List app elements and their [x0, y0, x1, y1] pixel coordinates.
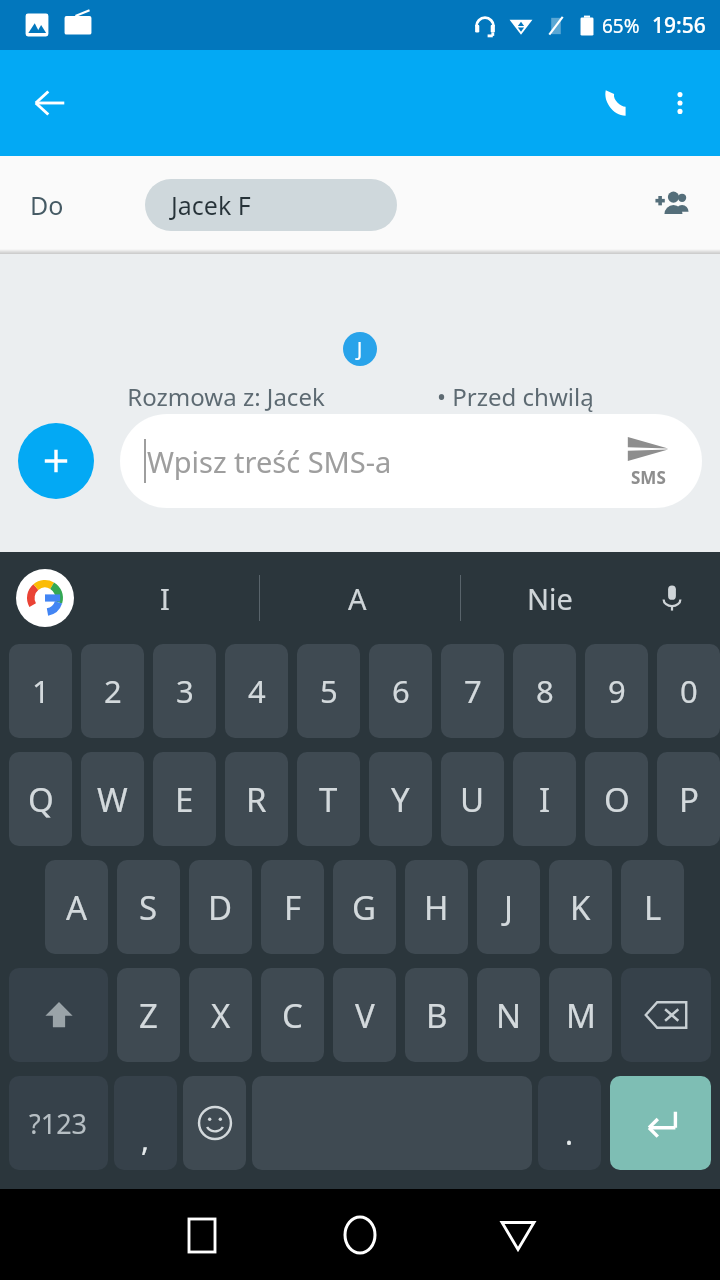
staticText: X [211, 993, 231, 1038]
button[interactable]: Send SMS [612, 425, 684, 497]
staticText: I [539, 777, 551, 822]
staticText: 3 [176, 670, 194, 712]
staticText: B [426, 993, 448, 1038]
staticText: 2 [104, 670, 122, 712]
button[interactable]: Jacek F [145, 179, 397, 231]
button[interactable]: V [333, 968, 396, 1062]
button[interactable]: Nie [465, 552, 635, 644]
button[interactable]: Home [328, 1203, 392, 1267]
staticText: J [357, 336, 363, 362]
button[interactable]: Z [117, 968, 180, 1062]
button[interactable]: X [189, 968, 252, 1062]
staticText: 1 [32, 670, 50, 712]
staticText: 6 [392, 670, 410, 712]
staticText: E [175, 777, 194, 822]
staticText: Wpisz treść SMS-a [147, 442, 392, 481]
button[interactable]: ?123 [9, 1076, 108, 1170]
button[interactable]: P [657, 752, 720, 846]
staticText: Jacek F [171, 188, 251, 222]
staticText: W [97, 777, 128, 822]
button[interactable]: Y [369, 752, 432, 846]
button[interactable]: Wpisz treść SMS-a [120, 414, 702, 508]
button[interactable]: Emoji [183, 1076, 246, 1170]
button[interactable]: Voice input [644, 570, 700, 626]
staticText: 0 [680, 670, 698, 712]
staticText: 9 [608, 670, 626, 712]
button[interactable]: More options [652, 75, 708, 131]
staticText: Z [139, 993, 158, 1038]
staticText: F [284, 885, 302, 930]
button[interactable]: R [225, 752, 288, 846]
button[interactable]: M [549, 968, 612, 1062]
button[interactable]: O [585, 752, 648, 846]
button[interactable]: A [272, 552, 442, 644]
staticText: 7 [464, 670, 482, 712]
staticText: 65% [602, 13, 640, 39]
staticText: Rozmowa z: Jacek • Przed chwilą [127, 380, 594, 413]
button[interactable]: B [405, 968, 468, 1062]
staticText: SMS [631, 466, 666, 489]
button[interactable]: Call [588, 75, 644, 131]
button[interactable]: . [538, 1076, 601, 1170]
staticText: 19:56 [652, 11, 706, 40]
button[interactable]: 6 [369, 644, 432, 738]
button[interactable]: Back [486, 1203, 550, 1267]
button[interactable]: T [297, 752, 360, 846]
button[interactable]: A [45, 860, 108, 954]
button[interactable]: J [477, 860, 540, 954]
button[interactable]: Back [22, 75, 78, 131]
staticText: ?123 [29, 1105, 88, 1142]
button[interactable]: Add contact [644, 177, 700, 233]
staticText: Q [28, 777, 54, 822]
staticText: H [424, 885, 449, 930]
button[interactable]: 2 [81, 644, 144, 738]
button[interactable]: 5 [297, 644, 360, 738]
button[interactable]: D [189, 860, 252, 954]
staticText: Y [391, 777, 410, 822]
staticText: K [570, 885, 591, 930]
staticText: M [566, 993, 596, 1038]
button[interactable]: I [80, 552, 250, 644]
button[interactable]: 9 [585, 644, 648, 738]
button[interactable]: I [513, 752, 576, 846]
staticText: 4 [248, 670, 266, 712]
staticText: 8 [536, 670, 554, 712]
button[interactable]: Enter [610, 1076, 711, 1170]
button[interactable]: W [81, 752, 144, 846]
button[interactable]: 8 [513, 644, 576, 738]
button[interactable]: U [441, 752, 504, 846]
button[interactable]: 0 [657, 644, 720, 738]
button[interactable]: Google search [16, 569, 74, 627]
staticText: S [139, 885, 158, 930]
button[interactable]: Add attachment [18, 423, 94, 499]
staticText: J [504, 885, 514, 930]
button[interactable]: E [153, 752, 216, 846]
staticText: T [319, 777, 338, 822]
button[interactable]: L [621, 860, 684, 954]
button[interactable]: Shift [9, 968, 108, 1062]
button[interactable]: 4 [225, 644, 288, 738]
button[interactable]: G [333, 860, 396, 954]
button[interactable]: N [477, 968, 540, 1062]
button[interactable]: Q [9, 752, 72, 846]
button[interactable]: C [261, 968, 324, 1062]
button[interactable]: K [549, 860, 612, 954]
button[interactable]: 3 [153, 644, 216, 738]
button[interactable]: 7 [441, 644, 504, 738]
staticText: G [352, 885, 377, 930]
button[interactable]: Recents [170, 1203, 234, 1267]
button[interactable]: S [117, 860, 180, 954]
staticText: Do [30, 188, 64, 222]
button[interactable]: F [261, 860, 324, 954]
staticText: . [565, 1113, 574, 1154]
staticText: P [679, 777, 699, 822]
staticText: R [246, 777, 267, 822]
staticText: N [496, 993, 522, 1038]
staticText: I [160, 579, 170, 618]
staticText: Nie [527, 579, 573, 618]
button[interactable]: H [405, 860, 468, 954]
button[interactable]: 1 [9, 644, 72, 738]
button[interactable]: Backspace [621, 968, 711, 1062]
button[interactable]: , [114, 1076, 177, 1170]
